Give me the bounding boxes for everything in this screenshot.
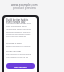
- staticText: Track your progress and stay motivated d…: [6, 22, 31, 27]
- staticText: What you get: [6, 49, 21, 52]
- button[interactable]: Get started: [6, 63, 35, 69]
- staticText: Choose a plan: [6, 41, 22, 44]
- staticText: Full access to everything No hidden cost…: [6, 53, 32, 58]
- staticText: Unlimited habit tracking Detailed weekly…: [6, 28, 31, 37]
- staticText: Billed monthly or yearly: [6, 45, 31, 48]
- staticText: www.example.com: [11, 3, 38, 7]
- staticText: Get started: [14, 65, 27, 68]
- staticText: product preview: [13, 6, 36, 10]
- staticText: Build better habits every single day: [6, 18, 29, 23]
